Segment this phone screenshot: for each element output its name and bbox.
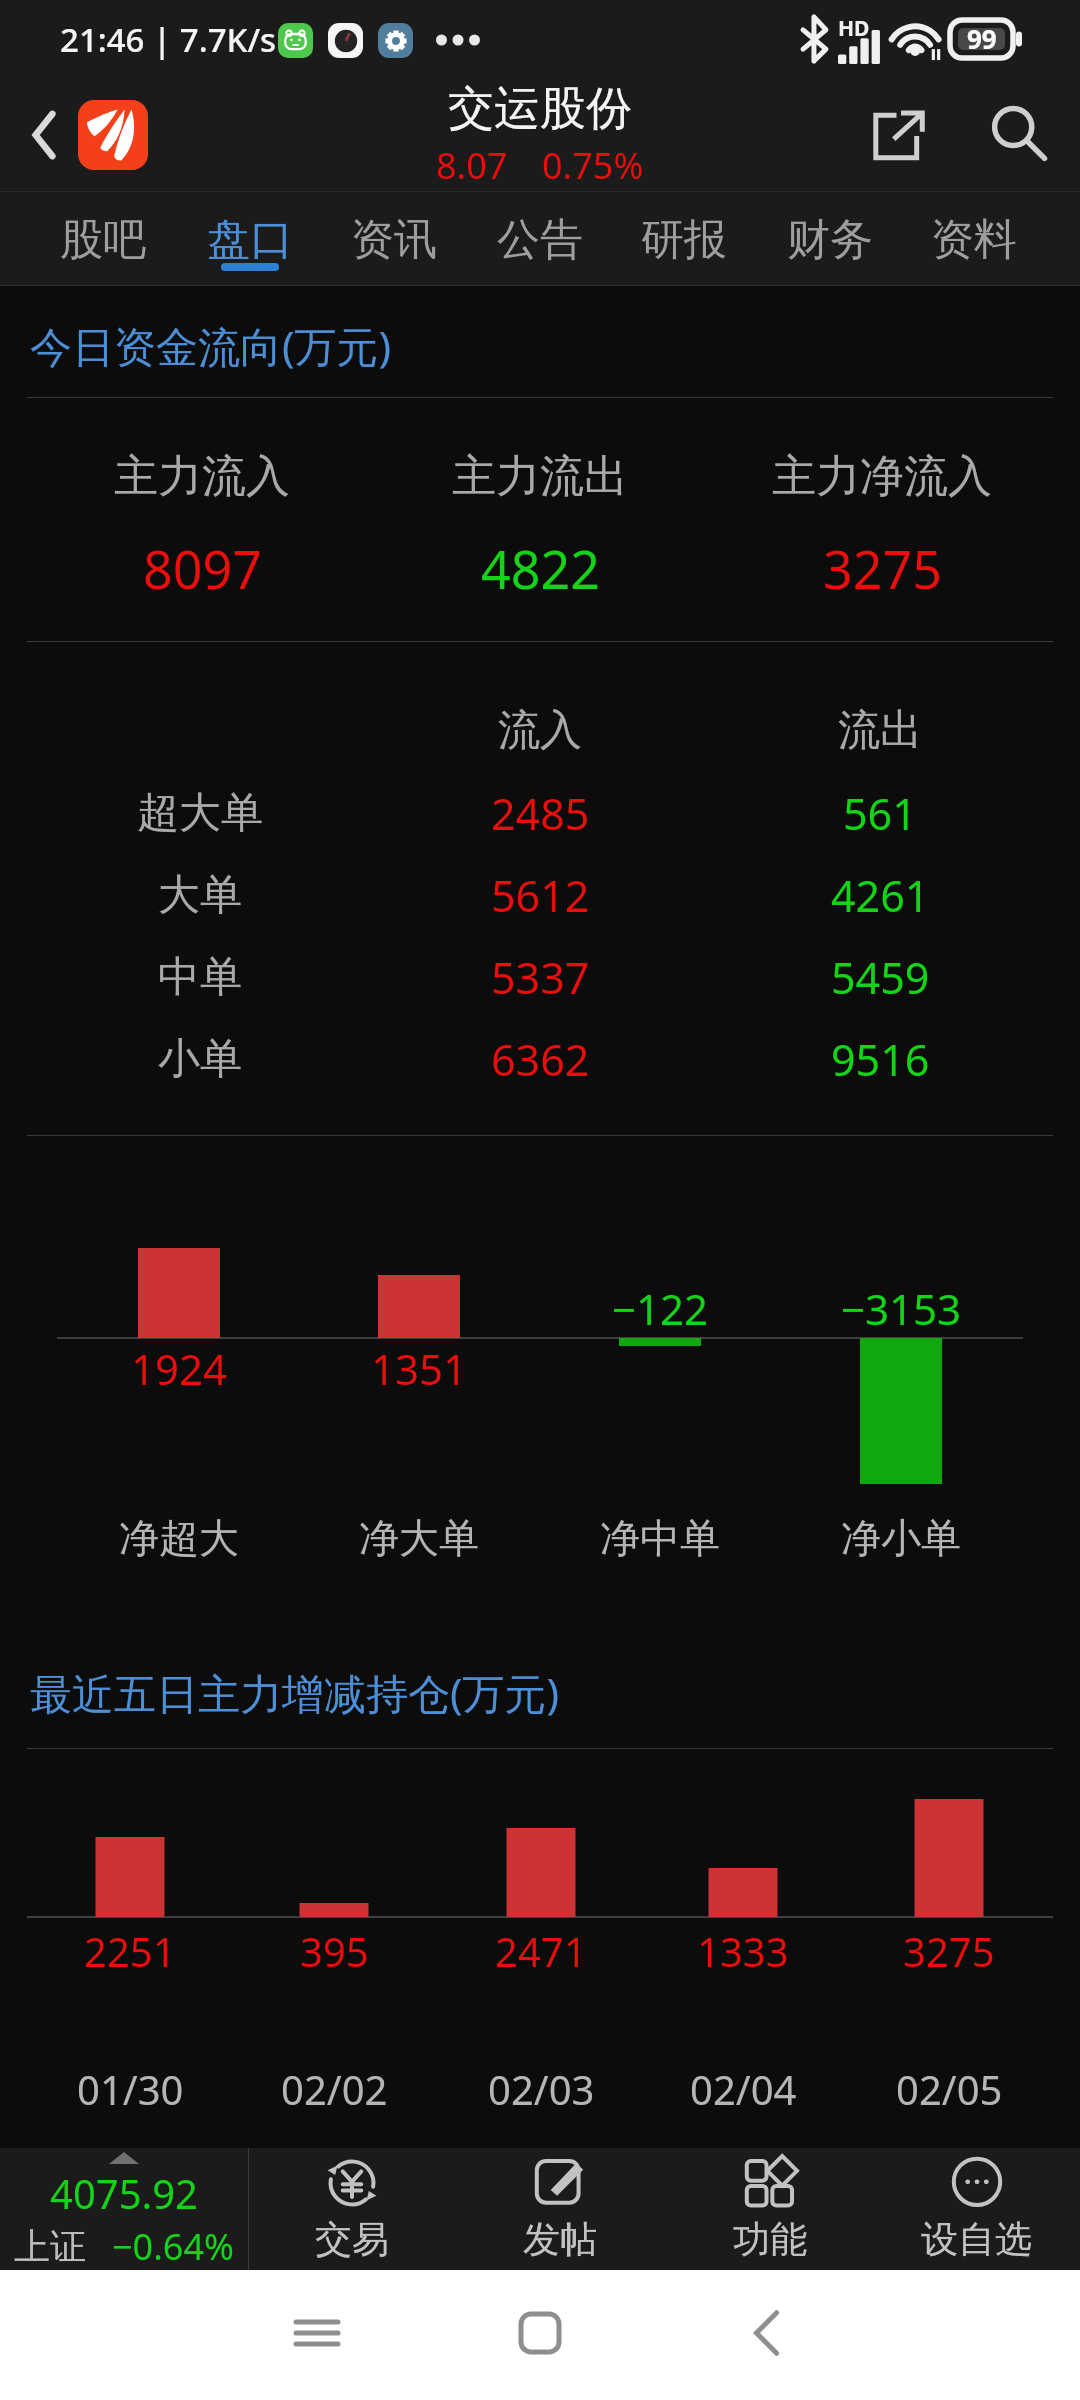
- staticText: 净超大: [119, 1513, 239, 1563]
- staticText: 中单: [158, 951, 242, 1004]
- staticText: 流入: [498, 704, 582, 757]
- staticText: 最近五日主力增减持仓(万元): [30, 1664, 560, 1721]
- button[interactable]: 发帖: [465, 2148, 655, 2270]
- button[interactable]: Back: [8, 99, 80, 171]
- button[interactable]: 公告: [470, 192, 610, 286]
- staticText: 设自选: [921, 2216, 1032, 2263]
- staticText: 99: [967, 21, 997, 56]
- staticText: 9516: [831, 1030, 930, 1089]
- staticText: 1351: [371, 1340, 468, 1397]
- staticText: 2251: [84, 1924, 176, 1978]
- staticText: HD: [838, 14, 870, 43]
- staticText: 0.75%: [542, 141, 644, 190]
- staticText: 2471: [495, 1924, 587, 1978]
- staticText: 超大单: [137, 787, 263, 840]
- staticText: 5459: [831, 948, 930, 1007]
- staticText: 公告: [497, 213, 583, 267]
- staticText: 02/02: [281, 2062, 388, 2116]
- staticText: 5612: [491, 866, 590, 925]
- staticText: 净小单: [841, 1513, 961, 1563]
- staticText: 净中单: [600, 1513, 720, 1563]
- button[interactable]: 研报: [614, 192, 754, 286]
- button[interactable]: 资讯: [324, 192, 464, 286]
- staticText: 395: [300, 1924, 369, 1978]
- staticText: 发帖: [523, 2216, 597, 2263]
- staticText: 2485: [491, 784, 590, 843]
- staticText: 上证: [14, 2224, 86, 2269]
- staticText: 研报: [641, 213, 727, 267]
- staticText: 净大单: [359, 1513, 479, 1563]
- button[interactable]: Recent apps: [269, 2285, 365, 2381]
- button[interactable]: Back: [718, 2285, 814, 2381]
- staticText: −3153: [841, 1280, 962, 1337]
- staticText: 股吧: [60, 213, 146, 267]
- staticText: 交易: [315, 2216, 389, 2263]
- button[interactable]: 4075.92: [0, 2148, 248, 2270]
- staticText: 资料: [931, 213, 1017, 267]
- staticText: 02/03: [488, 2062, 595, 2116]
- staticText: 02/04: [690, 2062, 797, 2116]
- button[interactable]: 功能: [675, 2148, 865, 2270]
- staticText: 交运股份: [448, 80, 632, 138]
- staticText: 5337: [491, 948, 590, 1007]
- staticText: 02/05: [896, 2062, 1003, 2116]
- button[interactable]: Share: [858, 93, 944, 179]
- staticText: 3275: [903, 1924, 995, 1978]
- staticText: 561: [843, 784, 917, 843]
- staticText: 盘口: [207, 213, 293, 267]
- staticText: 21:46 | 7.7K/s: [60, 17, 277, 62]
- staticText: 01/30: [77, 2062, 184, 2116]
- staticText: 6362: [491, 1030, 590, 1089]
- staticText: 功能: [733, 2216, 807, 2263]
- staticText: −0.64%: [112, 2222, 234, 2270]
- staticText: 流出: [838, 704, 922, 757]
- button[interactable]: Home: [492, 2285, 588, 2381]
- staticText: 4075.92: [50, 2166, 198, 2220]
- staticText: 资讯: [351, 213, 437, 267]
- button[interactable]: 盘口: [180, 192, 320, 286]
- button[interactable]: 设自选: [881, 2148, 1071, 2270]
- staticText: 主力流出: [452, 449, 628, 504]
- staticText: 1924: [131, 1340, 228, 1397]
- button[interactable]: 交易: [257, 2148, 447, 2270]
- staticText: −122: [612, 1280, 709, 1337]
- staticText: 主力净流入: [772, 449, 992, 504]
- button[interactable]: 财务: [760, 192, 900, 286]
- button[interactable]: 资料: [904, 192, 1044, 286]
- staticText: 财务: [787, 213, 873, 267]
- staticText: 8.07: [436, 141, 508, 190]
- staticText: 小单: [158, 1033, 242, 1086]
- staticText: 4261: [831, 866, 930, 925]
- button[interactable]: Eastmoney home: [78, 100, 148, 170]
- staticText: 4822: [481, 533, 600, 604]
- button[interactable]: Search: [976, 91, 1062, 177]
- staticText: 8097: [143, 533, 262, 604]
- staticText: 3275: [823, 533, 942, 604]
- staticText: 今日资金流向(万元): [30, 317, 392, 374]
- button[interactable]: 股吧: [33, 192, 173, 286]
- staticText: 大单: [158, 869, 242, 922]
- staticText: 主力流入: [114, 449, 290, 504]
- staticText: 1333: [697, 1924, 789, 1978]
